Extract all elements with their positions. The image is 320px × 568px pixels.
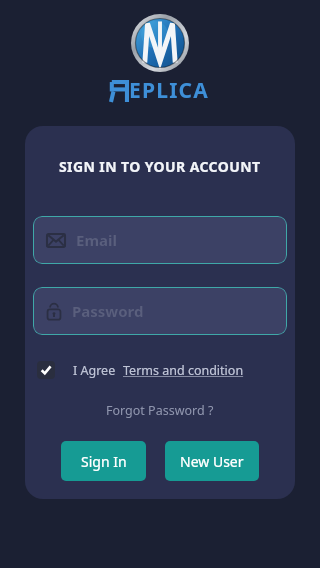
staticText: Sign In xyxy=(81,452,127,471)
button[interactable]: Password xyxy=(33,287,287,335)
button[interactable]: Terms and condition xyxy=(123,362,244,379)
staticText: Password xyxy=(72,301,144,321)
button[interactable] xyxy=(37,361,55,379)
staticText: I Agree xyxy=(73,362,116,379)
staticText: Email xyxy=(76,230,117,250)
staticText: Terms and condition xyxy=(123,362,244,379)
staticText: Forgot Password ? xyxy=(106,402,214,419)
staticText: EPLICA xyxy=(129,76,209,105)
staticText: SIGN IN TO YOUR ACCOUNT xyxy=(59,157,261,176)
button[interactable]: Sign In xyxy=(61,441,146,481)
button[interactable]: New User xyxy=(165,441,259,481)
staticText: New User xyxy=(180,452,244,471)
button[interactable]: Forgot Password ? xyxy=(106,402,214,419)
button[interactable]: Email xyxy=(33,216,287,264)
